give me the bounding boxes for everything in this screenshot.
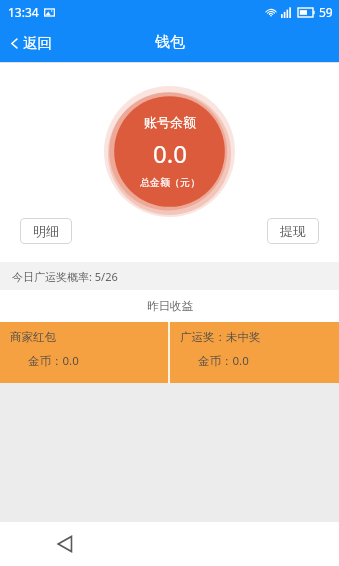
staticText: 商家红包 bbox=[10, 330, 56, 344]
staticText: 广运奖：未中奖 bbox=[180, 330, 261, 344]
button[interactable]: 明细 bbox=[20, 218, 72, 244]
button[interactable]: Back bbox=[50, 529, 80, 559]
button[interactable]: 广运奖：未中奖 bbox=[170, 322, 339, 383]
staticText: 账号余额 bbox=[144, 114, 196, 130]
staticText: 返回 bbox=[23, 34, 52, 52]
staticText: 昨日收益 bbox=[147, 299, 193, 313]
staticText: 明细 bbox=[33, 223, 59, 239]
staticText: 0.0 bbox=[153, 137, 187, 170]
staticText: 金币：0.0 bbox=[28, 353, 79, 369]
button[interactable]: 账号余额 bbox=[140, 114, 200, 189]
button[interactable]: 返回 bbox=[0, 28, 64, 58]
staticText: 总金额（元） bbox=[140, 176, 200, 189]
staticText: 金币：0.0 bbox=[198, 353, 249, 369]
button[interactable]: 商家红包 bbox=[0, 322, 168, 383]
staticText: 提现 bbox=[280, 223, 306, 239]
staticText: 钱包 bbox=[155, 33, 185, 52]
staticText: 13:34 bbox=[8, 4, 39, 20]
staticText: 59 bbox=[319, 4, 333, 20]
button[interactable]: 提现 bbox=[267, 218, 319, 244]
staticText: 今日广运奖概率: 5/26 bbox=[12, 269, 118, 284]
